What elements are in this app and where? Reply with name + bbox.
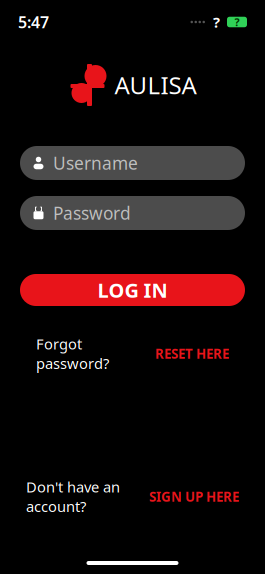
button[interactable]: RESET HERE xyxy=(155,345,229,362)
button[interactable]: Username xyxy=(20,146,245,180)
staticText: ? xyxy=(213,12,220,32)
staticText: Password xyxy=(53,201,131,224)
staticText: Username xyxy=(53,151,138,174)
staticText: Don't have an account? xyxy=(26,477,120,516)
staticText: ? xyxy=(234,15,239,29)
button[interactable]: SIGN UP HERE xyxy=(149,488,239,505)
staticText: AULISA xyxy=(114,69,196,101)
staticText: SIGN UP HERE xyxy=(149,488,239,505)
staticText: RESET HERE xyxy=(155,345,229,362)
staticText: 5:47 xyxy=(18,11,49,33)
staticText: LOG IN xyxy=(97,277,167,303)
button[interactable]: Password xyxy=(20,196,245,230)
staticText: Forgot password? xyxy=(36,334,109,373)
button[interactable]: LOG IN xyxy=(20,274,245,306)
